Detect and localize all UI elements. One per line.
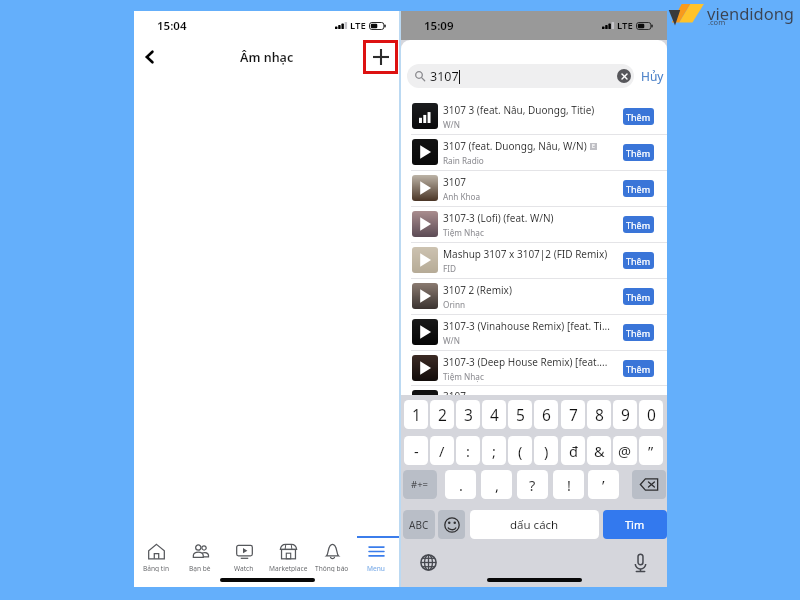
- staticText: Âm nhạc: [240, 49, 294, 66]
- button[interactable]: Add music: [363, 40, 398, 74]
- button[interactable]: Tìm: [603, 510, 667, 539]
- button[interactable]: 6: [534, 400, 558, 429]
- staticText: W/N: [443, 335, 460, 346]
- button[interactable]: @: [613, 436, 637, 465]
- staticText: ): [544, 441, 549, 461]
- button[interactable]: ): [534, 436, 558, 465]
- staticText: 1: [412, 404, 421, 425]
- button[interactable]: 3107 3 (feat. Nâu, Duongg, Titie): [401, 98, 667, 134]
- button[interactable]: :: [456, 436, 480, 465]
- staticText: 6: [542, 404, 551, 425]
- button[interactable]: !: [553, 470, 584, 499]
- staticText: Thông báo: [315, 564, 349, 572]
- button[interactable]: Thêm: [623, 252, 654, 269]
- staticText: Rain Radio: [443, 155, 484, 166]
- button[interactable]: Bạn bè: [177, 540, 223, 572]
- staticText: 3107-3 (Deep House Remix) [feat....: [443, 355, 608, 369]
- staticText: :: [466, 441, 470, 461]
- staticText: .com: [708, 17, 726, 27]
- button[interactable]: Backspace: [632, 470, 666, 499]
- staticText: Mashup 3107 x 3107|2 (FID Remix): [443, 247, 608, 261]
- button[interactable]: Thêm: [623, 180, 654, 197]
- staticText: ?: [529, 475, 536, 495]
- button[interactable]: 2: [430, 400, 454, 429]
- button[interactable]: Emoji keyboard: [438, 510, 465, 539]
- button[interactable]: Thêm: [623, 288, 654, 305]
- staticText: Anh Khoa: [443, 191, 481, 202]
- button[interactable]: 3: [456, 400, 480, 429]
- button[interactable]: &: [587, 436, 611, 465]
- button[interactable]: (: [508, 436, 532, 465]
- staticText: ABC: [409, 518, 429, 532]
- staticText: Thêm: [626, 327, 651, 339]
- staticText: viendidong: [707, 2, 795, 24]
- button[interactable]: 3107: [401, 170, 667, 206]
- button[interactable]: 8: [587, 400, 611, 429]
- staticText: 5: [516, 404, 525, 425]
- staticText: 15:04: [157, 18, 187, 34]
- staticText: 4: [490, 404, 499, 425]
- button[interactable]: /: [430, 436, 454, 465]
- staticText: 3107: [430, 68, 459, 85]
- staticText: ;: [492, 441, 496, 461]
- staticText: 3107 2 (Remix): [443, 283, 512, 297]
- button[interactable]: 3107-3 (Vinahouse Remix) [feat. Ti...: [401, 314, 667, 350]
- button[interactable]: 5: [508, 400, 532, 429]
- button[interactable]: Thêm: [623, 324, 654, 341]
- button[interactable]: 0: [639, 400, 663, 429]
- staticText: Thêm: [626, 255, 651, 267]
- button[interactable]: Thêm: [623, 360, 654, 377]
- button[interactable]: ;: [482, 436, 506, 465]
- staticText: Tìm: [625, 517, 645, 532]
- button[interactable]: 4: [482, 400, 506, 429]
- staticText: 3107 (feat. Duongg, Nâu, W/N): [443, 139, 587, 153]
- button[interactable]: .: [445, 470, 476, 499]
- staticText: Marketplace: [269, 564, 308, 572]
- button[interactable]: ’: [588, 470, 619, 499]
- button[interactable]: Watch: [221, 540, 267, 572]
- button[interactable]: Menu: [353, 540, 399, 572]
- staticText: FID: [443, 263, 457, 274]
- button[interactable]: Thông báo: [309, 540, 355, 572]
- staticText: !: [567, 475, 571, 495]
- button[interactable]: Thêm: [623, 144, 654, 161]
- staticText: dấu cách: [510, 517, 559, 533]
- button[interactable]: ”: [639, 436, 663, 465]
- button[interactable]: 9: [613, 400, 637, 429]
- button[interactable]: Thêm: [623, 108, 654, 125]
- button[interactable]: 1: [404, 400, 428, 429]
- button[interactable]: 3107 2 (Remix): [401, 278, 667, 314]
- staticText: Orinn: [443, 299, 466, 310]
- button[interactable]: ?: [517, 470, 548, 499]
- button[interactable]: đ: [561, 436, 585, 465]
- staticText: Tiệm Nhạc: [443, 227, 484, 238]
- staticText: 3107-3 (Lofi) (feat. W/N): [443, 211, 554, 225]
- staticText: 3107: [443, 175, 466, 189]
- staticText: -: [414, 441, 419, 461]
- button[interactable]: Change keyboard: [417, 551, 439, 573]
- button[interactable]: ,: [481, 470, 512, 499]
- staticText: 3107: [443, 389, 466, 395]
- button[interactable]: dấu cách: [470, 510, 599, 539]
- staticText: 0: [647, 404, 656, 425]
- staticText: ,: [495, 475, 499, 495]
- button[interactable]: 3107-3 (Lofi) (feat. W/N): [401, 206, 667, 242]
- button[interactable]: Thêm: [623, 216, 654, 233]
- button[interactable]: #+=: [403, 470, 437, 499]
- button[interactable]: Clear search: [617, 69, 631, 83]
- button[interactable]: 3107-3 (Deep House Remix) [feat....: [401, 350, 667, 386]
- button[interactable]: Mashup 3107 x 3107|2 (FID Remix): [401, 242, 667, 278]
- button[interactable]: Hủy: [639, 64, 665, 88]
- button[interactable]: -: [404, 436, 428, 465]
- button[interactable]: 7: [561, 400, 585, 429]
- button[interactable]: Bảng tin: [133, 540, 179, 572]
- staticText: LTE: [350, 19, 366, 32]
- button[interactable]: 3107 (feat. Duongg, Nâu, W/N): [401, 134, 667, 170]
- button[interactable]: Back: [135, 43, 163, 71]
- staticText: .: [459, 475, 463, 495]
- button[interactable]: 3107: [407, 64, 634, 88]
- button[interactable]: Marketplace: [265, 540, 311, 572]
- button[interactable]: ABC: [403, 510, 435, 539]
- button[interactable]: Dictation: [629, 551, 651, 573]
- staticText: LTE: [617, 19, 633, 32]
